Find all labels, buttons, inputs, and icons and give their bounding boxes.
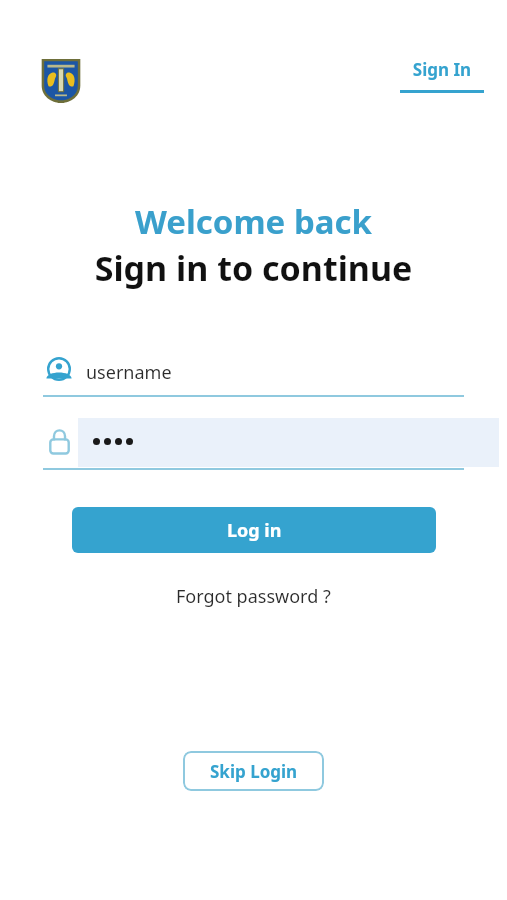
staticText: Welcome back — [0, 199, 507, 244]
staticText: username — [86, 360, 172, 385]
staticText: Forgot password ? — [176, 584, 331, 609]
button[interactable]: Skip Login — [183, 751, 324, 791]
staticText: Sign in to continue — [0, 245, 507, 291]
button[interactable]: Log in — [72, 507, 436, 553]
button[interactable]: Forgot password ? — [166, 580, 341, 613]
other: App logo — [38, 56, 84, 106]
staticText: Skip Login — [210, 760, 298, 783]
button[interactable]: Sign In — [392, 58, 492, 93]
staticText: Sign In — [392, 58, 492, 81]
staticText: Log in — [227, 518, 282, 543]
button[interactable] — [43, 418, 464, 470]
button[interactable]: username — [43, 348, 464, 397]
